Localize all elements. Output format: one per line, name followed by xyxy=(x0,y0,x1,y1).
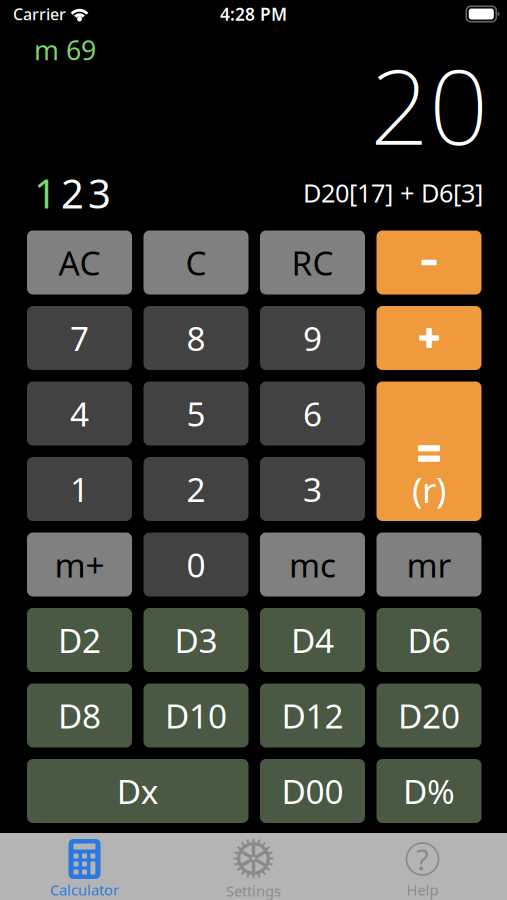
staticText: 9 xyxy=(303,316,322,360)
button[interactable]: 4 xyxy=(27,381,132,445)
staticText: Settings xyxy=(226,881,281,900)
staticText: 3 xyxy=(88,166,111,219)
staticText: D12 xyxy=(281,693,343,738)
staticText: RC xyxy=(291,240,333,285)
staticText: D00 xyxy=(281,769,343,813)
staticText: mr xyxy=(406,542,451,587)
staticText: D20[17] + D6[3] xyxy=(303,176,483,209)
button[interactable]: Plus xyxy=(376,306,481,370)
button[interactable]: Dx xyxy=(27,759,248,823)
button[interactable]: D6 xyxy=(376,608,481,672)
staticText: D8 xyxy=(58,693,101,738)
button[interactable]: m+ xyxy=(27,532,132,596)
button[interactable]: D8 xyxy=(27,683,132,747)
button[interactable]: D10 xyxy=(143,683,248,747)
button[interactable]: 6 xyxy=(260,381,365,445)
staticText: 1 xyxy=(34,166,57,219)
staticText: 4:28 PM xyxy=(220,2,287,25)
staticText: (r) xyxy=(412,466,446,512)
button[interactable]: D% xyxy=(376,759,481,823)
button[interactable]: D00 xyxy=(260,759,365,823)
button[interactable]: D2 xyxy=(27,608,132,672)
button[interactable]: C xyxy=(143,230,248,294)
staticText: 6 xyxy=(303,391,322,436)
staticText: 8 xyxy=(186,316,205,360)
button[interactable]: 9 xyxy=(260,306,365,370)
button[interactable]: D12 xyxy=(260,683,365,747)
button[interactable]: D4 xyxy=(260,608,365,672)
staticText: Dx xyxy=(117,769,159,813)
staticText: 2 xyxy=(186,467,205,511)
button[interactable]: D20 xyxy=(376,683,481,747)
staticText: 7 xyxy=(70,316,89,360)
staticText: D% xyxy=(403,769,455,813)
button[interactable]: mc xyxy=(260,532,365,596)
button[interactable]: 2 xyxy=(143,457,248,521)
button[interactable]: 1 xyxy=(27,457,132,521)
staticText: D3 xyxy=(174,618,217,662)
button[interactable]: Calculator xyxy=(0,833,169,900)
button[interactable]: ? xyxy=(338,833,507,900)
button[interactable]: RC xyxy=(260,230,365,294)
button[interactable]: 8 xyxy=(143,306,248,370)
staticText: 20 xyxy=(370,35,488,173)
staticText: ? xyxy=(416,839,429,878)
staticText: D20 xyxy=(398,693,460,738)
button[interactable]: mr xyxy=(376,532,481,596)
button[interactable]: 0 xyxy=(143,532,248,596)
staticText: 0 xyxy=(186,542,205,587)
staticText: D2 xyxy=(58,618,101,662)
button[interactable]: 3 xyxy=(260,457,365,521)
staticText: 4 xyxy=(70,391,89,436)
button[interactable]: Settings xyxy=(169,833,338,900)
staticText: 1 xyxy=(70,467,89,511)
staticText: m 69 xyxy=(34,32,96,68)
button[interactable]: D3 xyxy=(143,608,248,672)
staticText: 3 xyxy=(303,467,322,511)
staticText: D10 xyxy=(165,693,227,738)
staticText: AC xyxy=(58,240,100,285)
staticText: m+ xyxy=(54,542,104,587)
staticText: D4 xyxy=(291,618,334,662)
staticText: Help xyxy=(406,880,438,899)
staticText: Carrier xyxy=(13,3,66,25)
button[interactable]: (r) xyxy=(376,381,481,521)
staticText: Calculator xyxy=(50,880,119,899)
staticText: C xyxy=(185,240,206,285)
staticText: 2 xyxy=(61,166,84,219)
button[interactable]: AC xyxy=(27,230,132,294)
button[interactable]: Minus xyxy=(376,230,481,294)
staticText: D6 xyxy=(407,618,450,662)
staticText: mc xyxy=(289,542,336,587)
staticText: 5 xyxy=(186,391,205,436)
button[interactable]: 7 xyxy=(27,306,132,370)
button[interactable]: 5 xyxy=(143,381,248,445)
